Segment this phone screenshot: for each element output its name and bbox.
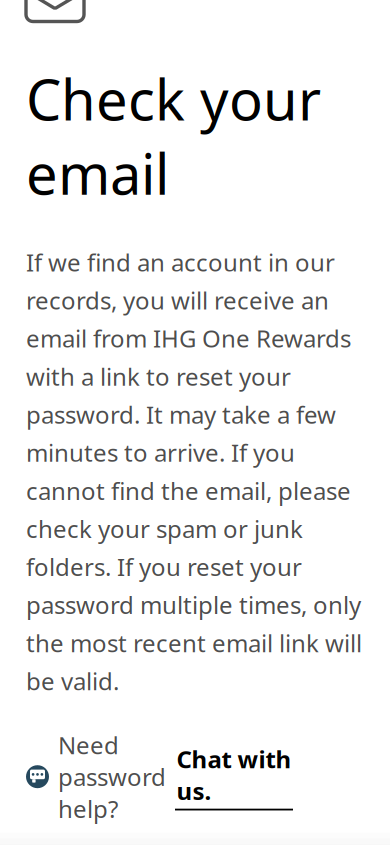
staticText: Need password help? <box>58 729 166 824</box>
button[interactable]: Need password help? <box>26 729 364 824</box>
staticText: Chat with us. <box>176 743 291 807</box>
staticText: Check your email <box>26 61 321 210</box>
staticText: If we find an account in our records, yo… <box>26 246 362 697</box>
